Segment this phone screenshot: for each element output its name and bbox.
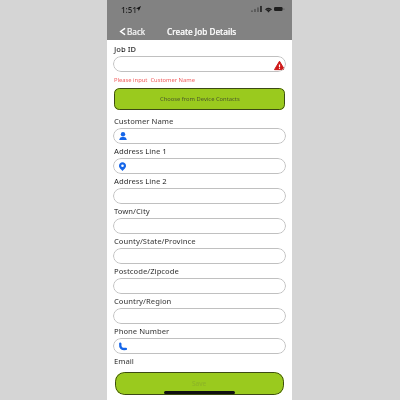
staticText: Save (192, 379, 207, 388)
button[interactable]: Phone (113, 338, 286, 354)
staticText: Please input Customer Name (114, 76, 195, 84)
staticText: Job ID (114, 44, 137, 54)
staticText: Country/Region (114, 296, 172, 306)
button[interactable] (113, 188, 286, 204)
button[interactable] (113, 248, 286, 264)
other: Error (274, 60, 285, 71)
other: Contact (119, 132, 127, 140)
button[interactable] (113, 278, 286, 294)
button[interactable]: Back (120, 23, 146, 39)
staticText: 1:51 (121, 4, 137, 15)
staticText: Customer Name (114, 116, 174, 126)
button[interactable] (113, 218, 286, 234)
other: Location (119, 162, 126, 171)
button[interactable]: Save (115, 372, 284, 395)
button[interactable]: Contact (113, 128, 286, 144)
staticText: Address Line 2 (114, 176, 167, 186)
staticText: Town/City (114, 206, 150, 216)
button[interactable]: Choose from Device Contacts (114, 88, 285, 110)
button[interactable]: Error (113, 56, 286, 72)
staticText: County/State/Province (114, 236, 196, 246)
staticText: Postcode/Zipcode (114, 266, 179, 276)
button[interactable]: Location (113, 158, 286, 174)
staticText: Choose from Device Contacts (160, 95, 240, 103)
other: Phone (119, 342, 127, 350)
button[interactable] (113, 308, 286, 324)
staticText: Email (114, 356, 134, 366)
staticText: Back (127, 26, 146, 37)
staticText: Address Line 1 (114, 146, 167, 156)
staticText: Phone Number (114, 326, 170, 336)
staticText: Create Job Details (167, 26, 237, 37)
